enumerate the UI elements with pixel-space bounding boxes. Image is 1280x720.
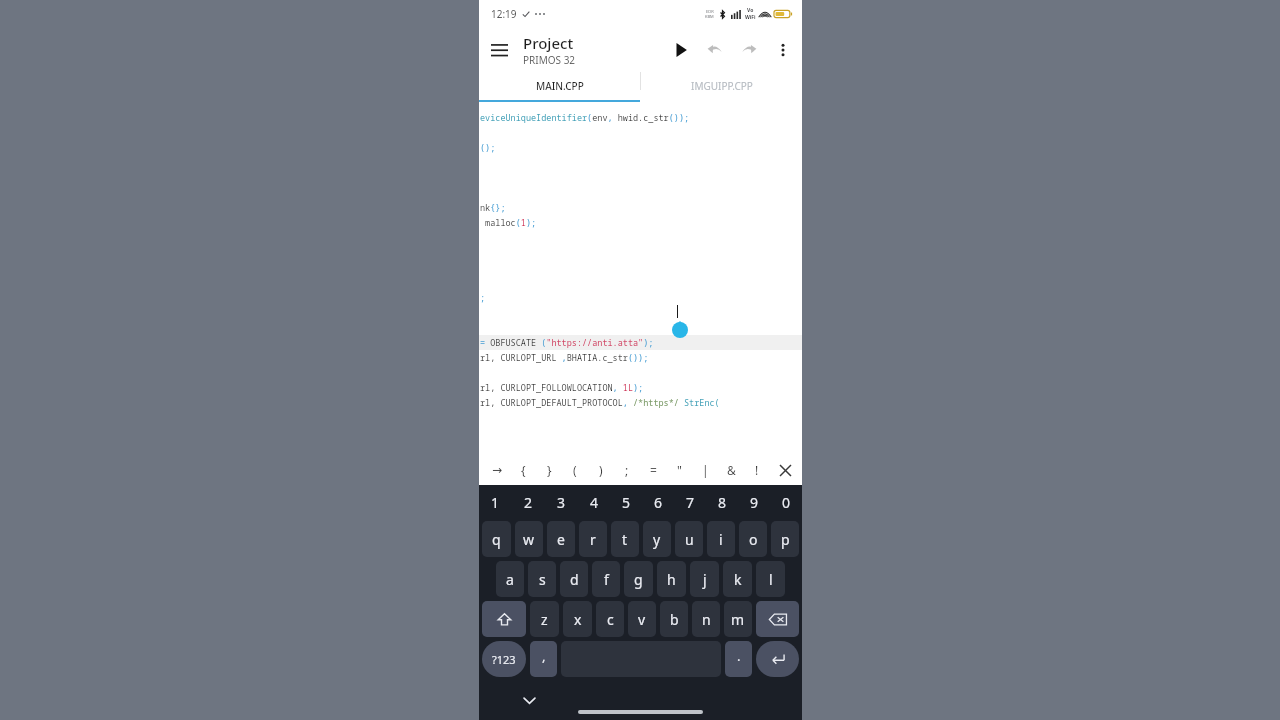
button[interactable]: a bbox=[496, 561, 524, 597]
button[interactable]: ; bbox=[614, 455, 640, 485]
button[interactable]: 1 bbox=[479, 485, 512, 519]
button[interactable]: c bbox=[596, 601, 624, 637]
staticText: & bbox=[727, 462, 736, 478]
button[interactable]: m bbox=[724, 601, 752, 637]
button[interactable]: | bbox=[692, 455, 718, 485]
button[interactable]: k bbox=[723, 561, 752, 597]
staticText: malloc(1); bbox=[480, 217, 537, 229]
button[interactable]: o bbox=[739, 521, 767, 557]
staticText: d bbox=[570, 570, 579, 589]
button[interactable]: & bbox=[718, 455, 744, 485]
staticText: ?123 bbox=[492, 652, 516, 667]
staticText: eviceUniqueIdentifier(env, hwid.c_str())… bbox=[480, 112, 690, 124]
button[interactable]: → bbox=[485, 455, 510, 485]
button[interactable]: ( bbox=[562, 455, 588, 485]
staticText: o bbox=[749, 530, 758, 549]
staticText: t bbox=[622, 530, 628, 549]
staticText: w bbox=[523, 530, 535, 549]
staticText: v bbox=[638, 610, 646, 629]
staticText: " bbox=[677, 462, 682, 478]
button[interactable]: Backspace bbox=[756, 601, 799, 637]
staticText: l bbox=[769, 570, 773, 589]
staticText: ( bbox=[573, 462, 577, 478]
button[interactable]: Shift bbox=[482, 601, 526, 637]
button[interactable]: Hide keyboard bbox=[515, 686, 543, 714]
button[interactable]: 0 bbox=[770, 485, 802, 519]
button[interactable]: e bbox=[547, 521, 575, 557]
button[interactable]: w bbox=[515, 521, 543, 557]
button[interactable]: z bbox=[530, 601, 559, 637]
staticText: 3 bbox=[557, 493, 566, 512]
button[interactable]: ! bbox=[744, 455, 770, 485]
button[interactable]: h bbox=[657, 561, 686, 597]
button[interactable]: , bbox=[530, 641, 557, 677]
button[interactable]: Close toolbar bbox=[770, 455, 800, 485]
button[interactable]: MAIN.CPP bbox=[479, 72, 640, 100]
button[interactable]: Menu bbox=[479, 30, 519, 70]
staticText: . bbox=[737, 647, 741, 665]
button[interactable]: d bbox=[560, 561, 588, 597]
button[interactable]: i bbox=[707, 521, 735, 557]
staticText: h bbox=[667, 570, 676, 589]
button[interactable]: g bbox=[624, 561, 653, 597]
button[interactable]: n bbox=[692, 601, 720, 637]
button[interactable]: 9 bbox=[738, 485, 770, 519]
button[interactable]: q bbox=[482, 521, 511, 557]
button[interactable]: x bbox=[563, 601, 592, 637]
button[interactable]: Run bbox=[664, 33, 698, 67]
staticText: rl, CURLOPT_DEFAULT_PROTOCOL, /*https*/ … bbox=[480, 397, 720, 409]
staticText: u bbox=[685, 530, 694, 549]
button[interactable]: " bbox=[666, 455, 692, 485]
staticText: ! bbox=[755, 462, 759, 478]
button[interactable]: More options bbox=[766, 33, 800, 67]
button[interactable]: f bbox=[592, 561, 620, 597]
staticText: b bbox=[670, 610, 679, 629]
staticText: 9 bbox=[750, 493, 759, 512]
button[interactable]: IMGUIPP.CPP bbox=[641, 72, 802, 100]
staticText: ) bbox=[599, 462, 603, 478]
button[interactable]: Undo bbox=[698, 33, 732, 67]
staticText: m bbox=[731, 610, 745, 629]
button[interactable]: p bbox=[771, 521, 799, 557]
staticText: ; bbox=[480, 292, 486, 304]
button[interactable]: 6 bbox=[642, 485, 674, 519]
button[interactable]: ) bbox=[588, 455, 614, 485]
button[interactable]: v bbox=[628, 601, 656, 637]
button[interactable]: . bbox=[725, 641, 752, 677]
button[interactable]: Redo bbox=[732, 33, 766, 67]
button[interactable]: b bbox=[660, 601, 688, 637]
staticText: 5 bbox=[622, 493, 631, 512]
button[interactable]: = bbox=[640, 455, 666, 485]
button[interactable]: u bbox=[675, 521, 703, 557]
button[interactable]: 7 bbox=[674, 485, 706, 519]
staticText: Vo bbox=[747, 7, 754, 14]
button[interactable]: 8 bbox=[706, 485, 738, 519]
staticText: KBM bbox=[705, 14, 714, 19]
button[interactable]: l bbox=[756, 561, 785, 597]
staticText: → bbox=[492, 463, 503, 477]
staticText: 1 bbox=[491, 493, 500, 512]
button[interactable]: ?123 bbox=[482, 641, 526, 677]
button[interactable]: 5 bbox=[610, 485, 642, 519]
staticText: e bbox=[557, 530, 565, 549]
staticText: EDR bbox=[706, 9, 714, 14]
button[interactable]: 3 bbox=[545, 485, 578, 519]
staticText: i bbox=[719, 530, 723, 549]
button[interactable]: 2 bbox=[512, 485, 545, 519]
button[interactable]: { bbox=[510, 455, 536, 485]
staticText: 4 bbox=[590, 493, 599, 512]
button[interactable]: j bbox=[690, 561, 719, 597]
button[interactable]: s bbox=[528, 561, 556, 597]
button[interactable]: Enter bbox=[756, 641, 799, 677]
staticText: s bbox=[539, 570, 546, 589]
staticText: rl, CURLOPT_URL ,BHATIA.c_str()); bbox=[480, 352, 649, 364]
button[interactable]: t bbox=[611, 521, 639, 557]
staticText: 0 bbox=[782, 493, 791, 512]
button[interactable]: y bbox=[643, 521, 671, 557]
button[interactable]: r bbox=[579, 521, 607, 557]
staticText: f bbox=[604, 570, 609, 589]
button[interactable]: } bbox=[536, 455, 562, 485]
staticText: WiFi bbox=[745, 14, 756, 21]
button[interactable]: 4 bbox=[578, 485, 610, 519]
